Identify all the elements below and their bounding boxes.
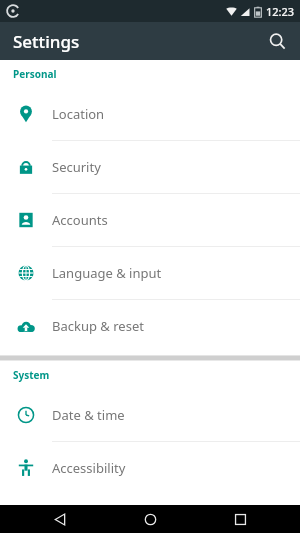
staticText: Location [52, 105, 105, 123]
staticText: Security [52, 158, 101, 176]
staticText: Accounts [52, 211, 108, 229]
staticText: Accessibility [52, 459, 126, 477]
staticText: Date & time [52, 406, 125, 424]
button[interactable]: Search [260, 24, 294, 58]
staticText: Backup & reset [52, 317, 144, 335]
staticText: 12:23 [266, 4, 295, 19]
button[interactable]: Back [30, 505, 90, 533]
staticText: System [13, 368, 50, 382]
staticText: Settings [13, 30, 80, 53]
button[interactable]: Security [0, 141, 300, 193]
button[interactable]: Accessibility [0, 442, 300, 494]
button[interactable]: Accounts [0, 194, 300, 246]
button[interactable]: Recent apps [210, 505, 270, 533]
button[interactable]: Backup & reset [0, 300, 300, 352]
button[interactable]: Date & time [0, 389, 300, 441]
button[interactable]: Home [120, 505, 180, 533]
button[interactable]: Location [0, 88, 300, 140]
staticText: Personal [13, 67, 57, 81]
button[interactable]: Language & input [0, 247, 300, 299]
staticText: Language & input [52, 264, 162, 282]
